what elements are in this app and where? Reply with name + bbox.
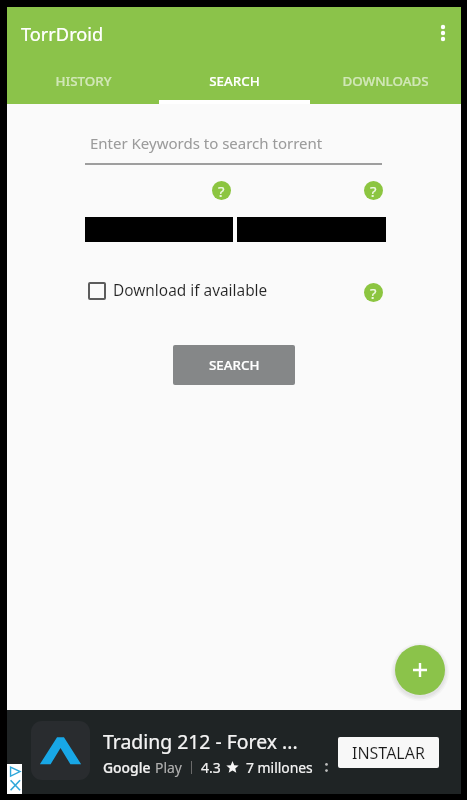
staticText: SEARCH — [209, 356, 260, 374]
staticText: ? — [218, 181, 225, 200]
staticText: 7 millones — [246, 758, 313, 777]
button[interactable]: More options — [419, 12, 461, 54]
button[interactable]: Download if available — [88, 280, 268, 301]
staticText: ? — [370, 283, 377, 302]
staticText: Trading 212 - Forex ... — [103, 728, 298, 754]
staticText: ? — [370, 181, 377, 200]
staticText: Download if available — [113, 280, 268, 301]
staticText: INSTALAR — [352, 742, 425, 764]
button[interactable]: Help — [364, 283, 383, 302]
button[interactable]: Ad choices — [7, 764, 22, 794]
button[interactable]: SEARCH — [173, 345, 295, 385]
button[interactable]: DOWNLOADS — [310, 58, 461, 104]
staticText: HISTORY — [55, 72, 112, 90]
button[interactable]: Help — [364, 181, 383, 200]
button[interactable]: HISTORY — [7, 58, 159, 104]
staticText: SEARCH — [209, 72, 260, 90]
staticText: Play — [155, 758, 182, 777]
button[interactable]: Add — [395, 645, 445, 695]
staticText: TorrDroid — [21, 22, 104, 47]
button[interactable]: INSTALAR — [338, 737, 439, 768]
button[interactable]: Help — [212, 181, 231, 200]
staticText: 4.3 — [201, 758, 221, 777]
button[interactable]: SEARCH — [159, 58, 310, 104]
staticText: Google — [103, 758, 151, 777]
staticText: Enter Keywords to search torrent — [90, 133, 323, 153]
staticText: DOWNLOADS — [342, 72, 429, 90]
